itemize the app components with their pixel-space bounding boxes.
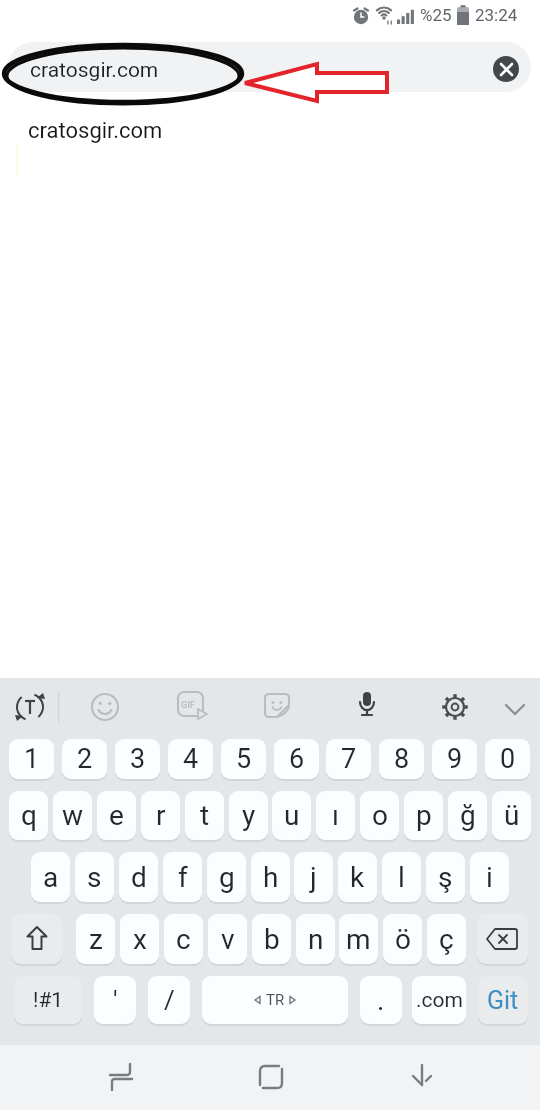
button[interactable]: cratosgir.com bbox=[8, 42, 531, 92]
staticText: v bbox=[221, 923, 235, 956]
button[interactable] bbox=[12, 914, 62, 964]
button[interactable]: 1 bbox=[9, 739, 54, 779]
button[interactable] bbox=[83, 685, 127, 729]
button[interactable]: ü bbox=[492, 791, 531, 840]
button[interactable] bbox=[97, 1053, 145, 1101]
staticText: 9 bbox=[447, 743, 463, 775]
button[interactable]: r bbox=[141, 791, 180, 840]
staticText: 1 bbox=[24, 743, 40, 775]
button[interactable]: ğ bbox=[448, 791, 487, 840]
button[interactable]: s bbox=[75, 852, 114, 902]
button[interactable]: 7 bbox=[326, 739, 371, 779]
staticText: !#1 bbox=[33, 988, 64, 1013]
button[interactable]: w bbox=[53, 791, 92, 840]
staticText: 8 bbox=[394, 743, 410, 775]
staticText: ö bbox=[395, 923, 411, 956]
button[interactable] bbox=[167, 684, 213, 730]
button[interactable]: t bbox=[185, 791, 224, 840]
staticText: 0 bbox=[500, 743, 516, 775]
button[interactable] bbox=[345, 685, 389, 729]
button[interactable]: ö bbox=[383, 914, 422, 964]
button[interactable]: m bbox=[339, 914, 378, 964]
button[interactable] bbox=[497, 691, 533, 727]
button[interactable]: / bbox=[148, 976, 190, 1024]
button[interactable] bbox=[433, 685, 477, 729]
staticText: . bbox=[377, 984, 385, 1017]
button[interactable]: ç bbox=[427, 914, 466, 964]
button[interactable]: y bbox=[229, 791, 268, 840]
staticText: ü bbox=[504, 799, 520, 832]
button[interactable]: 9 bbox=[432, 739, 477, 779]
staticText: o bbox=[372, 799, 388, 832]
button[interactable] bbox=[202, 976, 348, 1024]
staticText: 7 bbox=[341, 743, 357, 775]
staticText: e bbox=[109, 799, 124, 832]
button[interactable]: 6 bbox=[274, 739, 319, 779]
button[interactable]: z bbox=[76, 914, 115, 964]
button[interactable] bbox=[452, 5, 474, 27]
button[interactable]: e bbox=[97, 791, 136, 840]
button[interactable] bbox=[351, 6, 371, 26]
staticText: a bbox=[43, 861, 59, 894]
button[interactable]: 8 bbox=[379, 739, 424, 779]
staticText: i bbox=[486, 861, 493, 894]
button[interactable]: n bbox=[296, 914, 335, 964]
staticText: 2 bbox=[77, 743, 93, 775]
staticText: TR bbox=[266, 991, 285, 1009]
button[interactable]: 4 bbox=[168, 739, 213, 779]
button[interactable] bbox=[256, 685, 300, 729]
button[interactable]: !#1 bbox=[14, 976, 82, 1024]
staticText: z bbox=[89, 923, 103, 956]
button[interactable]: o bbox=[360, 791, 399, 840]
button[interactable]: f bbox=[163, 852, 202, 902]
button[interactable]: Git bbox=[478, 976, 528, 1024]
button[interactable]: x bbox=[120, 914, 159, 964]
button[interactable]: ş bbox=[426, 852, 465, 902]
button[interactable] bbox=[398, 1053, 446, 1101]
staticText: 6 bbox=[289, 743, 305, 775]
staticText: 5 bbox=[236, 743, 252, 775]
button[interactable]: i bbox=[470, 852, 509, 902]
staticText: q bbox=[21, 799, 37, 832]
button[interactable]: 3 bbox=[115, 739, 160, 779]
button[interactable]: .com bbox=[412, 976, 466, 1024]
button[interactable]: 5 bbox=[221, 739, 266, 779]
staticText: %25 bbox=[420, 5, 452, 25]
button[interactable]: d bbox=[119, 852, 158, 902]
button[interactable]: ' bbox=[94, 976, 136, 1024]
staticText: h bbox=[263, 861, 279, 894]
button[interactable]: cratosgir.com bbox=[0, 112, 540, 150]
button[interactable]: 2 bbox=[62, 739, 107, 779]
button[interactable] bbox=[395, 5, 417, 27]
button[interactable]: q bbox=[9, 791, 48, 840]
button[interactable]: v bbox=[208, 914, 247, 964]
button[interactable]: c bbox=[164, 914, 203, 964]
button[interactable] bbox=[8, 685, 52, 729]
button[interactable]: a bbox=[31, 852, 70, 902]
button[interactable]: l bbox=[382, 852, 421, 902]
staticText: 4 bbox=[183, 743, 199, 775]
button[interactable] bbox=[493, 56, 519, 82]
staticText: j bbox=[310, 861, 317, 894]
button[interactable]: . bbox=[360, 976, 402, 1024]
button[interactable]: k bbox=[338, 852, 377, 902]
staticText: ç bbox=[439, 923, 454, 956]
button[interactable]: h bbox=[251, 852, 290, 902]
button[interactable]: ı bbox=[316, 791, 355, 840]
button[interactable]: j bbox=[294, 852, 333, 902]
staticText: .com bbox=[416, 988, 463, 1013]
button[interactable]: u bbox=[272, 791, 311, 840]
button[interactable] bbox=[247, 1053, 295, 1101]
button[interactable]: g bbox=[207, 852, 246, 902]
button[interactable]: p bbox=[404, 791, 443, 840]
staticText: ' bbox=[113, 985, 118, 1015]
button[interactable] bbox=[477, 914, 528, 964]
staticText: n bbox=[308, 923, 324, 956]
button[interactable]: 0 bbox=[485, 739, 530, 779]
staticText: Git bbox=[487, 986, 519, 1015]
button[interactable] bbox=[375, 4, 397, 26]
staticText: s bbox=[87, 861, 102, 894]
staticText: u bbox=[284, 799, 300, 832]
staticText: x bbox=[133, 923, 147, 956]
button[interactable]: b bbox=[252, 914, 291, 964]
